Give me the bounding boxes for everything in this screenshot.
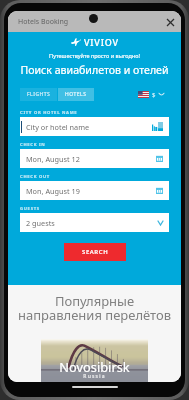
staticText: City or hotel name <box>26 122 152 132</box>
staticText: GUESTS <box>20 206 40 212</box>
staticText: VIVIOV <box>84 36 119 48</box>
button[interactable]: Mon, August 19 <box>20 181 169 200</box>
staticText: SEARCH <box>82 248 109 256</box>
staticText: FLIGHTS <box>27 91 51 98</box>
staticText: Mon, August 19 <box>26 186 156 196</box>
button[interactable]: FLIGHTS <box>20 88 57 101</box>
staticText: CHECK OUT <box>20 174 50 180</box>
staticText: Novosibirsk <box>41 358 148 375</box>
staticText: CHECK IN <box>20 142 46 148</box>
staticText: Hotels Booking <box>18 17 69 27</box>
button[interactable]: Close <box>164 16 177 29</box>
button[interactable]: Mon, August 12 <box>20 149 169 168</box>
button[interactable]: SEARCH <box>64 243 126 261</box>
button[interactable]: VIVIOV <box>20 36 169 48</box>
button[interactable]: Novosibirsk Russia <box>41 339 148 382</box>
button[interactable]: City or hotel name <box>20 117 169 136</box>
button[interactable]: 2 guests <box>20 213 169 232</box>
staticText: $ <box>152 91 156 99</box>
button[interactable]: HOTELS <box>58 88 94 101</box>
staticText: Путешествуйте просто и выгодно! <box>20 52 169 59</box>
staticText: Популярные направления перелётов <box>8 292 181 324</box>
staticText: HOTELS <box>65 91 87 98</box>
staticText: 2 guests <box>26 218 158 228</box>
staticText: Поиск авиабилетов и отелей <box>20 63 169 77</box>
staticText: CITY OR HOTEL NAME <box>20 110 78 116</box>
staticText: Mon, August 12 <box>26 154 156 164</box>
button[interactable]: Currency USD <box>138 88 169 101</box>
staticText: Russia <box>41 373 148 380</box>
